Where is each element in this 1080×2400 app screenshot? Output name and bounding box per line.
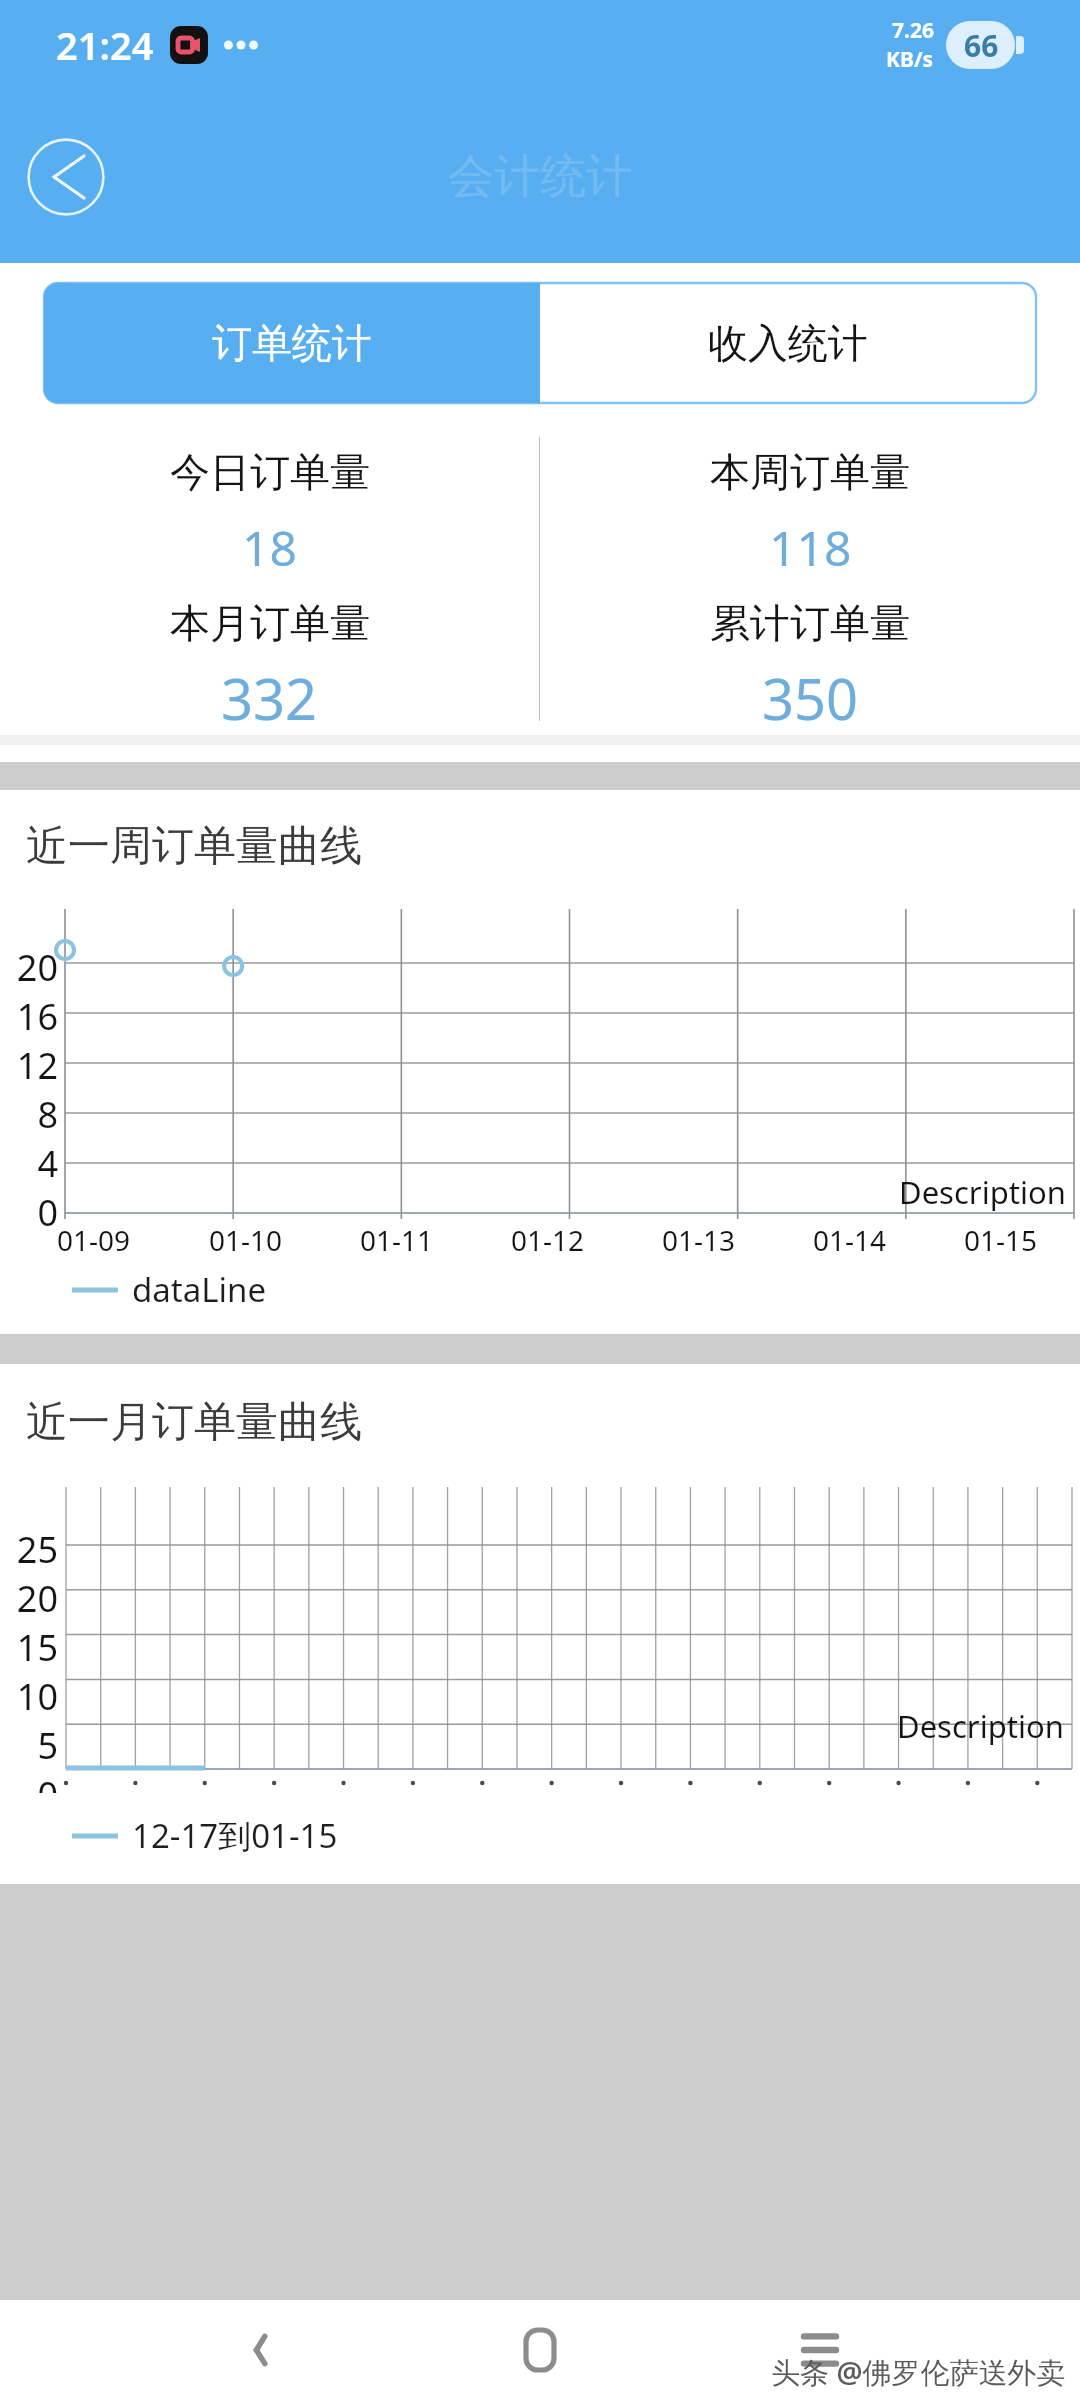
staticText: 350 (762, 660, 859, 735)
staticText: 0 (37, 1188, 58, 1233)
staticText: 01-14 (813, 1221, 887, 1259)
staticText: 01-13 (662, 1221, 736, 1259)
button[interactable]: 收入统计 (540, 283, 1036, 403)
staticText: 118 (769, 515, 852, 580)
staticText: 近一周订单量曲线 (26, 820, 362, 873)
staticText: 332 (221, 660, 318, 735)
staticText: 20 (16, 943, 58, 992)
staticText: 66 (964, 25, 999, 66)
button[interactable]: 订单统计 (44, 283, 540, 403)
button[interactable]: Back (26, 137, 106, 217)
staticText: 会计统计 (448, 148, 632, 206)
staticText: 累计订单量 (710, 598, 910, 648)
staticText: 16 (16, 992, 58, 1041)
button[interactable]: Home (400, 2300, 680, 2400)
button[interactable]: Recent apps (680, 2300, 960, 2400)
staticText: 01-10 (209, 1221, 283, 1259)
staticText: 本周订单量 (710, 447, 910, 497)
staticText: 25 (16, 1525, 58, 1574)
staticText: 头条 @佛罗伦萨送外卖 (771, 2352, 1066, 2392)
staticText: 12 (16, 1041, 58, 1090)
staticText: 今日订单量 (170, 447, 370, 497)
staticText: Description (899, 1171, 1066, 1213)
staticText: 本月订单量 (170, 598, 370, 648)
staticText: 订单统计 (212, 318, 372, 368)
staticText: 01-12 (511, 1221, 585, 1259)
staticText: 10 (16, 1672, 58, 1721)
staticText: 0 (37, 1770, 58, 1793)
staticText: 5 (37, 1721, 58, 1770)
staticText: Description (897, 1705, 1064, 1747)
staticText: 01-15 (964, 1221, 1038, 1259)
staticText: 18 (242, 515, 297, 580)
button[interactable]: Back (120, 2300, 400, 2400)
staticText: 01-09 (57, 1221, 131, 1259)
staticText: 近一月订单量曲线 (26, 1396, 362, 1449)
staticText: 21:24 (56, 19, 154, 71)
staticText: 8 (37, 1090, 58, 1139)
staticText: 12-17到01-15 (132, 1813, 338, 1858)
staticText: 收入统计 (708, 318, 868, 368)
staticText: KB/s (886, 45, 934, 74)
staticText: dataLine (132, 1267, 267, 1312)
staticText: 01-11 (360, 1221, 434, 1259)
staticText: 15 (16, 1623, 58, 1672)
staticText: 7.26 (892, 16, 934, 45)
staticText: 20 (16, 1574, 58, 1623)
staticText: 4 (37, 1139, 58, 1188)
